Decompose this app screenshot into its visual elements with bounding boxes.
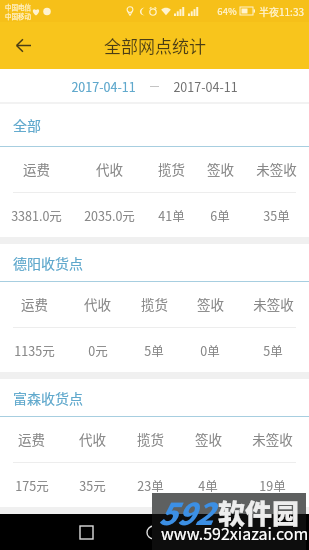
staticText: 运费 [21, 294, 48, 314]
staticText: 5单 [263, 341, 283, 359]
staticText: 1135元 [14, 341, 55, 359]
staticText: 软件园 [218, 493, 299, 532]
staticText: 全部网点统计 [104, 33, 206, 58]
staticText: 运费 [23, 159, 50, 179]
staticText: 代收 [79, 429, 106, 449]
staticText: 签收 [207, 159, 234, 179]
button[interactable]: Recents [139, 518, 168, 547]
staticText: 半夜11:33 [259, 4, 304, 18]
staticText: 富森收货点 [13, 388, 83, 408]
staticText: 23单 [137, 476, 164, 494]
button[interactable]: Home [72, 518, 101, 547]
staticText: 未签收 [256, 159, 297, 179]
staticText: 35单 [263, 206, 290, 224]
staticText: 全部 [13, 115, 41, 135]
staticText: 签收 [197, 294, 224, 314]
staticText: 中国电信 [5, 2, 31, 11]
staticText: 4单 [198, 476, 218, 494]
staticText: 运费 [18, 429, 45, 449]
staticText: 德阳收货点 [13, 253, 83, 273]
staticText: 代收 [84, 294, 111, 314]
staticText: 2017-04-11 [71, 77, 136, 95]
staticText: 0单 [200, 341, 220, 359]
staticText: 揽货 [141, 294, 168, 314]
staticText: 未签收 [253, 294, 294, 314]
staticText: 5单 [144, 341, 164, 359]
staticText: 揽货 [137, 429, 164, 449]
staticText: 6单 [210, 206, 230, 224]
button[interactable]: 2017-04-11 [170, 73, 241, 99]
staticText: 64% [217, 4, 237, 18]
staticText: 592 [158, 490, 213, 533]
staticText: 19单 [259, 476, 286, 494]
staticText: 中国移动 [5, 11, 31, 20]
staticText: www.592xiazai.com [161, 521, 309, 544]
staticText: 2035.0元 [84, 206, 135, 224]
staticText: 代收 [96, 159, 123, 179]
staticText: 2017-04-11 [173, 77, 238, 95]
button[interactable]: Back [0, 22, 47, 69]
staticText: 175元 [15, 476, 49, 494]
staticText: 0元 [88, 341, 108, 359]
staticText: 签收 [195, 429, 222, 449]
staticText: 3381.0元 [11, 206, 62, 224]
button[interactable]: 2017-04-11 [68, 73, 139, 99]
staticText: 41单 [158, 206, 185, 224]
staticText: 揽货 [158, 159, 185, 179]
staticText: 35元 [79, 476, 106, 494]
staticText: 未签收 [252, 429, 293, 449]
